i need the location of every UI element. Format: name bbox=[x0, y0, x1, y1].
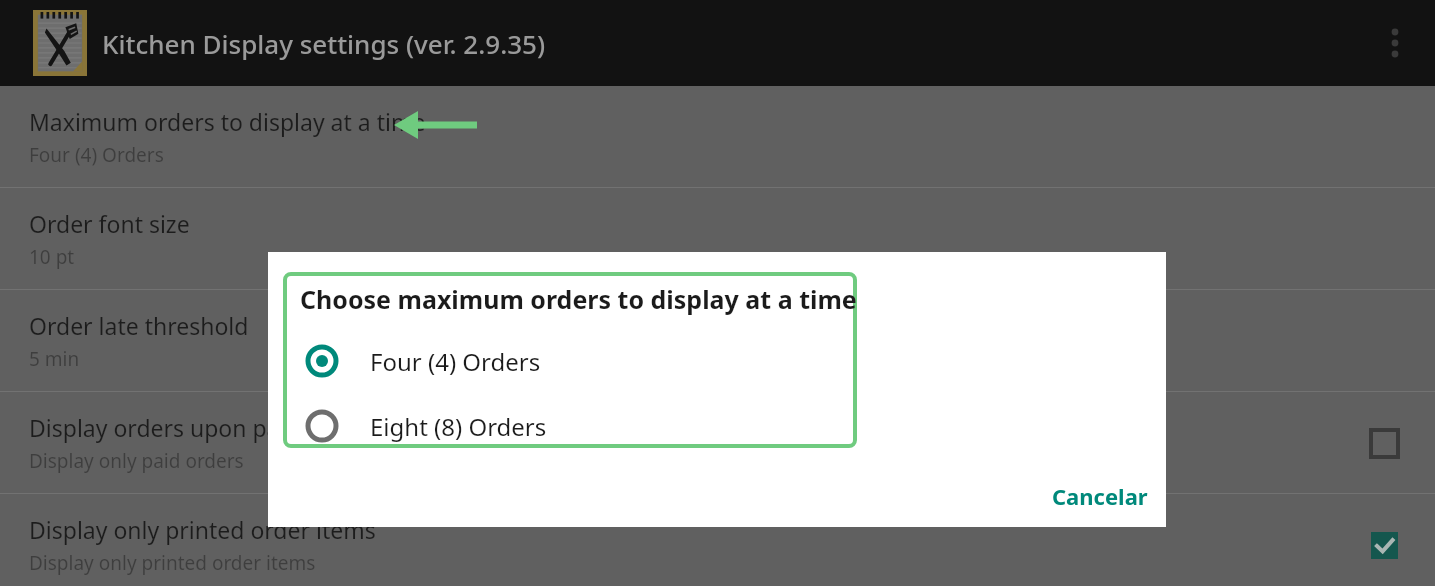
button[interactable]: Order late threshold bbox=[0, 290, 1435, 391]
staticText: Eight (8) Orders bbox=[370, 410, 547, 443]
button[interactable]: Order font size bbox=[0, 188, 1435, 289]
button[interactable]: Display only printed order items bbox=[0, 494, 1435, 586]
staticText: 10 pt bbox=[29, 244, 75, 270]
staticText: Cancelar bbox=[1052, 481, 1148, 511]
button[interactable]: Display orders upon payment bbox=[1359, 418, 1409, 468]
button[interactable]: More options bbox=[1367, 15, 1423, 71]
staticText: Four (4) Orders bbox=[370, 345, 541, 378]
staticText: Order font size bbox=[29, 208, 190, 239]
button[interactable]: Four (4) Orders bbox=[283, 332, 843, 390]
staticText: Display only printed order items bbox=[29, 550, 316, 576]
button[interactable]: Eight (8) Orders bbox=[283, 397, 843, 455]
button[interactable]: Cancelar bbox=[1030, 470, 1170, 522]
staticText: Four (4) Orders bbox=[29, 142, 164, 168]
button[interactable]: Display orders upon payment bbox=[0, 392, 1435, 493]
staticText: Display orders upon payment bbox=[29, 412, 349, 443]
staticText: Choose maximum orders to display at a ti… bbox=[300, 282, 857, 316]
staticText: Display only printed order items bbox=[29, 514, 376, 545]
button[interactable]: Maximum orders to display at a time bbox=[0, 86, 1435, 187]
staticText: Display only paid orders bbox=[29, 448, 244, 474]
staticText: Order late threshold bbox=[29, 310, 249, 341]
staticText: Maximum orders to display at a time bbox=[29, 106, 426, 137]
staticText: 5 min bbox=[29, 346, 80, 372]
staticText: Kitchen Display settings (ver. 2.9.35) bbox=[102, 26, 546, 61]
button[interactable]: Display only printed order items bbox=[1359, 520, 1409, 570]
